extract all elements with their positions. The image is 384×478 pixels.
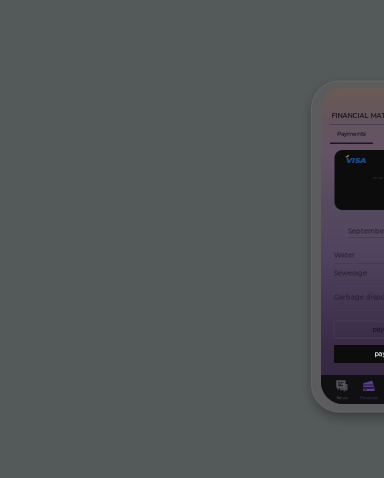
button[interactable]: pay for month xyxy=(334,321,384,338)
staticText: pay for month xyxy=(372,326,384,333)
staticText: News xyxy=(336,395,348,400)
staticText: pay (5 400 ₽) xyxy=(374,350,384,358)
staticText: VISA xyxy=(346,155,366,165)
staticText: Payments xyxy=(337,130,366,137)
button[interactable]: News xyxy=(329,375,356,404)
staticText: Finance xyxy=(360,395,378,400)
staticText: Garbage disposal xyxy=(334,293,384,301)
button[interactable]: pay (5 400 ₽) xyxy=(334,345,384,363)
staticText: •••• •••• •••• 4213 xyxy=(372,175,384,180)
staticText: Water xyxy=(334,251,355,259)
button[interactable]: Finance xyxy=(356,375,383,404)
staticText: Sewerage xyxy=(334,269,367,277)
staticText: FINANCIAL MATTERS xyxy=(331,111,384,120)
button[interactable]: Payments xyxy=(330,126,373,144)
staticText: September xyxy=(348,227,384,235)
